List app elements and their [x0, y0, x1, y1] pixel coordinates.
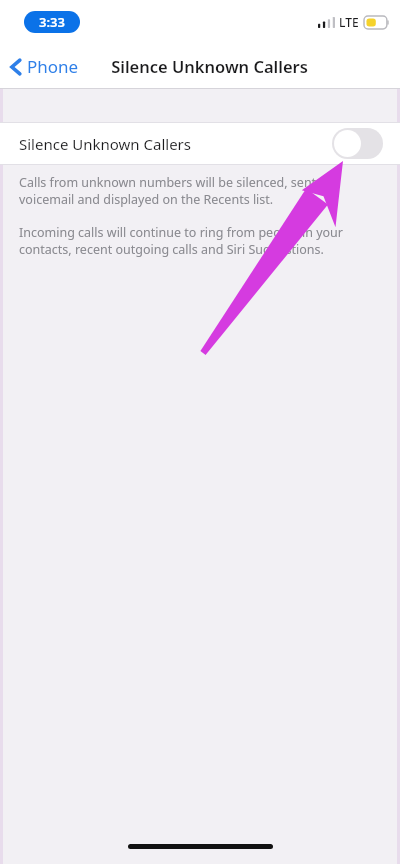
- staticText: Silence Unknown Callers: [111, 55, 308, 77]
- staticText: Phone: [27, 55, 79, 78]
- button[interactable]: Silence Unknown Callers toggle, off: [332, 128, 383, 159]
- button[interactable]: Silence Unknown Callers: [0, 123, 400, 164]
- button[interactable]: Phone: [0, 49, 87, 84]
- staticText: LTE: [339, 14, 359, 30]
- staticText: Incoming calls will continue to ring fro…: [19, 224, 343, 258]
- staticText: 3:33: [39, 13, 65, 31]
- staticText: Calls from unknown numbers will be silen…: [19, 174, 332, 208]
- staticText: Silence Unknown Callers: [19, 134, 191, 154]
